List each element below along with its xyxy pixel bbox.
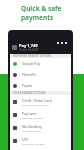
staticText: PREFERRED PAYMENT OPTIONS	[13, 54, 52, 58]
button[interactable]: Pay Later	[10, 108, 71, 121]
button[interactable]: Google Pay	[10, 58, 71, 69]
staticText: Pay 1,749	[19, 43, 38, 48]
staticText: All Indian banks	[22, 129, 41, 132]
staticText: UPI	[22, 137, 28, 142]
staticText: payments	[21, 13, 54, 22]
button[interactable]: Net Banking	[10, 121, 71, 134]
staticText: Order id 4289	[19, 48, 39, 52]
staticText: Google Pay	[22, 61, 41, 66]
button[interactable]: Credit / Debit Card	[10, 95, 71, 108]
staticText: Buy now, pay later	[22, 116, 44, 119]
staticText: Net Banking	[22, 124, 42, 129]
staticText: OTHER PAYMENT OPTIONS	[13, 91, 46, 95]
staticText: Save cards & pay faster	[22, 103, 50, 106]
button[interactable]: PhonePe	[10, 69, 71, 80]
staticText: Paytm	[22, 83, 33, 88]
staticText: Quick & safe	[21, 4, 62, 13]
button[interactable]: UPI	[10, 134, 71, 147]
staticText: Credit / Debit Card	[22, 98, 52, 103]
staticText: Pay by any UPI app	[22, 142, 45, 145]
staticText: Pay Later	[22, 111, 37, 116]
button[interactable]: Paytm	[10, 80, 71, 91]
staticText: PhonePe	[22, 72, 37, 77]
